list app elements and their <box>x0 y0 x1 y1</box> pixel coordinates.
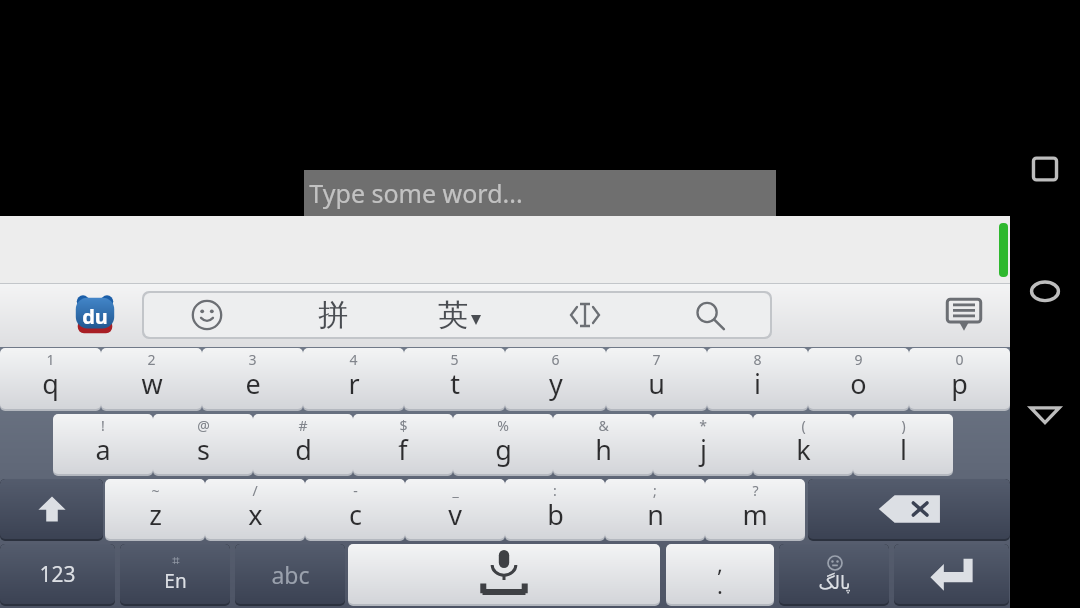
button[interactable]: Switch language <box>120 544 230 606</box>
staticText: a <box>95 431 111 468</box>
button[interactable]: % <box>453 414 553 476</box>
staticText: i <box>754 365 761 402</box>
button[interactable]: Move cursor <box>522 293 648 337</box>
staticText: 拼 <box>318 296 348 334</box>
button[interactable]: , <box>666 544 774 606</box>
staticText: n <box>647 496 664 533</box>
staticText: m <box>742 496 768 533</box>
button[interactable]: ; <box>605 479 705 541</box>
staticText: # <box>298 416 308 435</box>
staticText: ! <box>101 416 105 435</box>
button[interactable]: 0 <box>909 348 1010 411</box>
button[interactable]: @ <box>153 414 253 476</box>
button[interactable]: Numbers <box>0 544 115 606</box>
button[interactable]: 2 <box>101 348 202 411</box>
button[interactable]: 拼 <box>270 293 396 337</box>
button[interactable]: : <box>505 479 605 541</box>
staticText: d <box>295 431 312 468</box>
button[interactable]: $ <box>353 414 453 476</box>
staticText: u <box>648 365 665 402</box>
staticText: : <box>553 481 557 500</box>
staticText: - <box>353 481 358 500</box>
staticText: p <box>951 365 968 402</box>
button[interactable]: Back <box>1013 381 1077 445</box>
button[interactable]: 1 <box>0 348 101 411</box>
staticText: r <box>348 365 360 402</box>
staticText: 1 <box>46 350 55 369</box>
button[interactable]: Candidate panel <box>918 283 1010 347</box>
button[interactable]: 3 <box>202 348 303 411</box>
staticText: 9 <box>854 350 863 369</box>
staticText: 英 <box>438 296 468 334</box>
button[interactable]: Shift <box>0 479 103 541</box>
staticText: 8 <box>753 350 762 369</box>
staticText: t <box>450 365 460 402</box>
button[interactable]: Emoji <box>144 293 270 337</box>
staticText: , <box>717 548 723 578</box>
staticText: f <box>398 431 408 468</box>
staticText: @ <box>197 416 210 435</box>
button[interactable]: 英 <box>396 293 522 337</box>
staticText: l <box>900 431 907 468</box>
button[interactable]: Space <box>348 544 660 606</box>
button[interactable]: 7 <box>606 348 707 411</box>
staticText: 6 <box>551 350 560 369</box>
staticText: ~ <box>151 481 160 500</box>
staticText: / <box>252 481 258 500</box>
staticText: abc <box>271 559 310 590</box>
staticText: 7 <box>652 350 661 369</box>
staticText: _ <box>452 481 459 500</box>
staticText: Type some word... <box>309 176 523 210</box>
staticText: * <box>699 416 707 435</box>
staticText: z <box>149 496 162 533</box>
button[interactable]: - <box>305 479 405 541</box>
button[interactable]: 6 <box>505 348 606 411</box>
staticText: % <box>497 416 509 435</box>
button[interactable]: / <box>205 479 305 541</box>
button[interactable]: Baidu input settings <box>68 288 122 342</box>
button[interactable]: ! <box>53 414 153 476</box>
button[interactable]: & <box>553 414 653 476</box>
staticText: du <box>82 303 108 330</box>
staticText: o <box>850 365 867 402</box>
button[interactable]: Enter <box>894 544 1009 606</box>
button[interactable]: ~ <box>105 479 205 541</box>
button[interactable]: Search <box>648 293 770 337</box>
staticText: ; <box>653 481 657 500</box>
staticText: پالگ <box>818 572 851 593</box>
staticText: $ <box>399 416 408 435</box>
staticText: j <box>700 431 707 468</box>
button[interactable]: Recent apps <box>1013 137 1077 201</box>
staticText: 3 <box>248 350 257 369</box>
button[interactable]: Home <box>1013 259 1077 323</box>
button[interactable]: * <box>653 414 753 476</box>
button[interactable]: _ <box>405 479 505 541</box>
staticText: 4 <box>349 350 358 369</box>
button[interactable]: ? <box>705 479 805 541</box>
button[interactable]: 9 <box>808 348 909 411</box>
button[interactable]: Emoji keyboard <box>779 544 889 606</box>
button[interactable]: Type some word... <box>304 170 776 216</box>
staticText: x <box>248 496 263 533</box>
button[interactable]: ) <box>853 414 953 476</box>
staticText: k <box>796 431 811 468</box>
button[interactable]: 8 <box>707 348 808 411</box>
staticText: ? <box>752 481 759 500</box>
button[interactable]: Delete <box>808 479 1010 541</box>
staticText: g <box>495 431 512 468</box>
staticText: 123 <box>39 560 76 589</box>
staticText: & <box>598 416 609 435</box>
button[interactable]: 4 <box>303 348 404 411</box>
button[interactable]: 5 <box>404 348 505 411</box>
staticText: w <box>141 365 163 402</box>
staticText: ( <box>801 416 806 435</box>
staticText: ⌗ <box>172 555 180 568</box>
button[interactable]: Letters <box>235 544 345 606</box>
button[interactable]: # <box>253 414 353 476</box>
staticText: c <box>349 496 362 533</box>
staticText: ) <box>901 416 906 435</box>
staticText: b <box>547 496 564 533</box>
staticText: s <box>197 431 210 468</box>
button[interactable]: ( <box>753 414 853 476</box>
staticText: e <box>245 365 261 402</box>
